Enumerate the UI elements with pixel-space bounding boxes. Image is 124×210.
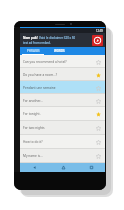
- button[interactable]: For two nights: [20, 121, 105, 135]
- staticText: My name is...: [23, 154, 94, 158]
- button[interactable]: Favourite: [94, 138, 102, 146]
- button[interactable]: Favourite: [94, 71, 102, 79]
- staticText: PHRASES: [27, 49, 40, 53]
- staticText: How to do it?: [23, 140, 94, 144]
- button[interactable]: My name is...: [20, 149, 105, 163]
- staticText: test ad from embed.: [23, 41, 51, 45]
- staticText: Can you recommend a hotel?: [23, 60, 94, 64]
- button[interactable]: Can you recommend a hotel?: [20, 55, 105, 68]
- staticText: Pendant une semaine: [23, 86, 94, 90]
- staticText: Do you have a room...?: [23, 73, 94, 77]
- button[interactable]: Favourite: [94, 110, 102, 118]
- button[interactable]: Advertisement banner: [20, 33, 105, 47]
- button[interactable]: Favourite: [94, 58, 102, 66]
- button[interactable]: Favourite: [94, 124, 102, 132]
- button[interactable]: For another...: [20, 94, 105, 107]
- button[interactable]: Do you have a room...?: [20, 68, 105, 81]
- button[interactable]: Pendant une semaine: [20, 81, 105, 94]
- button[interactable]: How to do it?: [20, 135, 105, 149]
- button[interactable]: Back: [20, 163, 49, 172]
- button[interactable]: Recent apps: [77, 163, 105, 172]
- button[interactable]: Home: [49, 163, 77, 172]
- button[interactable]: Favourite: [94, 97, 102, 105]
- button[interactable]: Favourite: [94, 84, 102, 92]
- staticText: WORDS: [54, 49, 65, 53]
- staticText: For another...: [23, 99, 94, 103]
- button[interactable]: For tonight.: [20, 107, 105, 121]
- staticText: For tonight.: [23, 112, 94, 116]
- staticText: Voici le disclaimer 320 x 50: [39, 36, 76, 40]
- button[interactable]: Favourite: [94, 152, 102, 160]
- button[interactable]: PHRASES: [20, 47, 46, 55]
- staticText: For two nights: [23, 126, 94, 130]
- button[interactable]: WORDS: [46, 47, 72, 55]
- staticText: Nom pub!: [23, 36, 38, 40]
- staticText: 12:39: [96, 29, 103, 33]
